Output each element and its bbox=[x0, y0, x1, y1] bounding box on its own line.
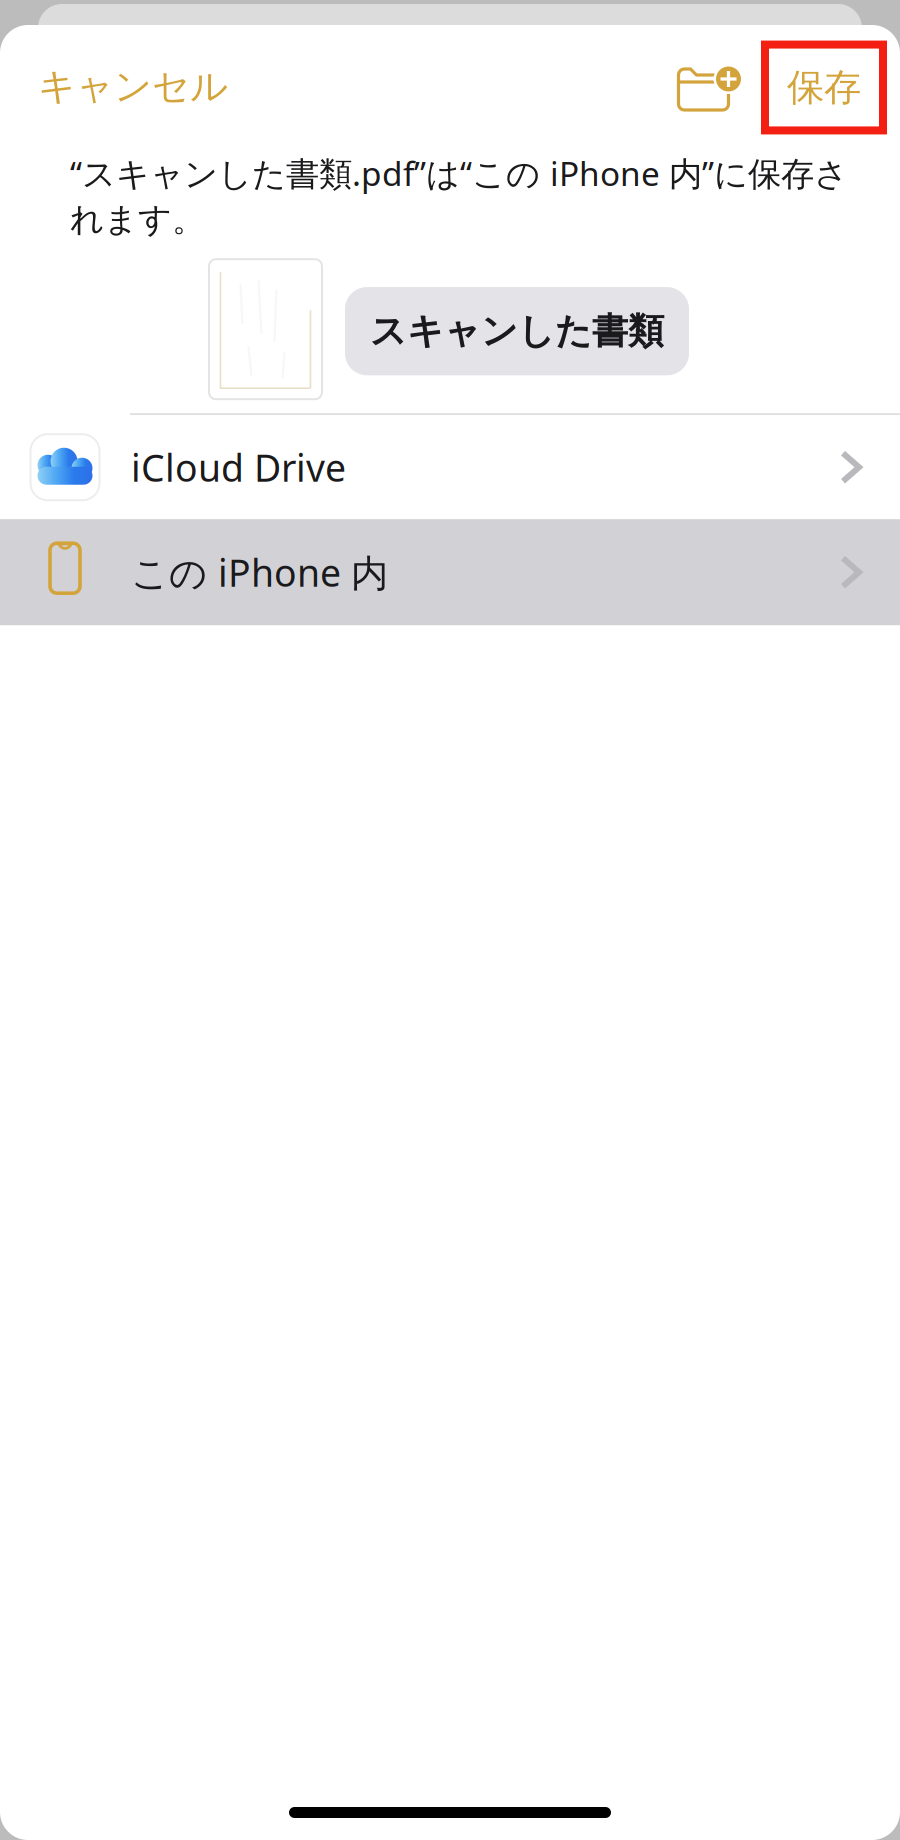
button[interactable]: この iPhone 内 bbox=[0, 519, 900, 625]
button[interactable]: キャンセル bbox=[0, 48, 248, 125]
button[interactable]: 保存 bbox=[765, 44, 900, 129]
staticText: iCloud Drive bbox=[131, 442, 346, 492]
staticText: れます。 bbox=[70, 199, 205, 240]
staticText: キャンセル bbox=[38, 64, 228, 109]
button[interactable]: 新規フォルダ bbox=[666, 50, 741, 123]
staticText: 保存 bbox=[787, 65, 861, 110]
staticText: “スキャンした書類.pdf”は“この iPhone 内”に保存さ bbox=[70, 151, 848, 195]
staticText: この iPhone 内 bbox=[131, 547, 388, 597]
staticText: スキャンした書類 bbox=[370, 309, 664, 353]
button[interactable]: iCloud Drive bbox=[0, 415, 900, 519]
